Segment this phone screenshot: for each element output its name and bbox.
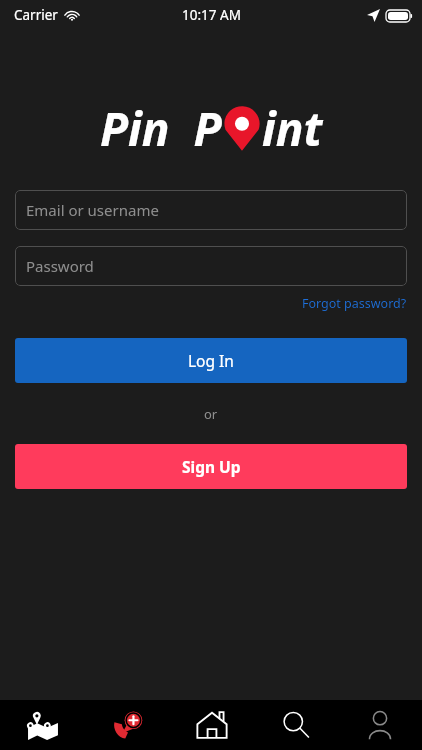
button[interactable]: Map xyxy=(0,700,85,750)
staticText: Carrier xyxy=(14,6,58,24)
staticText: Sign Up xyxy=(182,456,241,477)
button[interactable]: Log In xyxy=(15,338,407,383)
button[interactable]: Sign Up xyxy=(15,444,407,489)
button[interactable]: Profile xyxy=(338,700,422,750)
staticText: Pin P xyxy=(100,97,222,160)
button[interactable]: Password xyxy=(15,246,407,286)
staticText: int xyxy=(262,97,323,160)
staticText: Forgot password? xyxy=(302,295,407,312)
button[interactable]: Home xyxy=(170,700,254,750)
staticText: Email or username xyxy=(26,200,159,220)
staticText: Log In xyxy=(188,350,234,371)
button[interactable]: Forgot password? xyxy=(302,292,422,315)
button[interactable]: Email or username xyxy=(15,190,407,230)
staticText: or xyxy=(204,405,218,423)
staticText: 10:17 AM xyxy=(182,6,241,24)
button[interactable]: Search xyxy=(254,700,338,750)
staticText: Password xyxy=(26,256,94,276)
button[interactable]: Add call xyxy=(85,700,170,750)
